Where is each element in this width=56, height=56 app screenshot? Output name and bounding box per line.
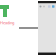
staticText: Heading — [0, 20, 14, 25]
